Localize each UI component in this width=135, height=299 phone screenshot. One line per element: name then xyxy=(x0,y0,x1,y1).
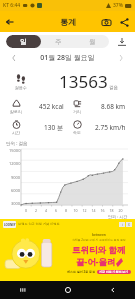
staticText: 18 xyxy=(107,208,116,213)
button[interactable]: Previous day xyxy=(8,52,20,64)
staticText: 2.75 km/h xyxy=(95,123,126,132)
staticText: 속도 xyxy=(73,130,81,135)
staticText: 끌-어-올려 xyxy=(76,256,116,268)
button[interactable]: Advertisement xyxy=(0,219,135,281)
staticText: 12000 xyxy=(9,161,21,166)
staticText: 단위 : 걸음 xyxy=(6,140,28,146)
staticText: 6 xyxy=(51,208,61,213)
staticText: 브랜드 신규 런칭 기념 이벤트 xyxy=(18,222,60,226)
staticText: 8.68 km xyxy=(101,102,126,111)
button[interactable]: 시간 xyxy=(6,117,67,138)
staticText: 지금 바로 기획전 보기 xyxy=(99,270,129,274)
button[interactable]: 속도 xyxy=(67,117,129,138)
staticText: 130 분 xyxy=(44,123,64,132)
staticText: 시간 xyxy=(12,130,20,135)
staticText: 9000 xyxy=(11,175,21,180)
staticText: 20 xyxy=(116,208,125,213)
staticText: 월 xyxy=(89,38,96,46)
button[interactable]: 일 xyxy=(6,35,41,48)
staticText: 15000 xyxy=(9,148,21,153)
button[interactable]: 거리 xyxy=(67,96,129,117)
staticText: 37% xyxy=(113,2,123,9)
button[interactable]: Info xyxy=(119,222,125,227)
button[interactable]: Back xyxy=(0,12,20,32)
button[interactable]: 월 xyxy=(75,35,109,48)
staticText: X xyxy=(128,223,130,227)
button[interactable]: Share xyxy=(115,13,133,31)
staticText: 10 xyxy=(71,208,80,213)
staticText: between xyxy=(92,233,106,237)
staticText: 2 xyxy=(31,208,41,213)
staticText: 일 xyxy=(20,38,27,46)
staticText: 16 xyxy=(98,208,107,213)
staticText: 걸음수 xyxy=(15,85,27,90)
button[interactable]: Download xyxy=(114,34,129,49)
staticText: 단위 : 시간 xyxy=(108,214,128,219)
staticText: i xyxy=(122,223,123,227)
staticText: 14 xyxy=(89,208,98,213)
staticText: 4 xyxy=(41,208,51,213)
button[interactable]: Recent apps xyxy=(0,281,45,299)
button[interactable]: 칼로리 xyxy=(6,96,67,117)
staticText: 3000 xyxy=(11,201,21,206)
staticText: 12 xyxy=(80,208,89,213)
button[interactable]: Home xyxy=(45,281,90,299)
staticText: KT 6:44 xyxy=(3,2,21,9)
staticText: 452 kcal xyxy=(39,102,64,111)
staticText: 6000 xyxy=(11,188,21,193)
staticText: 통계 xyxy=(60,17,76,27)
button[interactable]: Next day xyxy=(115,52,127,64)
staticText: 0 xyxy=(21,208,31,213)
staticText: 칼로리 xyxy=(10,109,22,114)
staticText: 8 xyxy=(61,208,71,213)
staticText: LOONEY xyxy=(4,223,16,227)
staticText: 트위티와 함께 xyxy=(72,244,126,256)
staticText: 거리 xyxy=(73,109,81,114)
staticText: 베스트 셀러 2종 증정 xyxy=(67,270,96,274)
staticText: 13563 xyxy=(59,70,108,93)
staticText: 걸음 xyxy=(109,85,118,91)
button[interactable]: 주 xyxy=(41,35,75,48)
staticText: 01월 28일 월요일 xyxy=(20,53,115,63)
staticText: 주 xyxy=(55,38,62,46)
button[interactable]: Camera xyxy=(97,13,115,31)
button[interactable]: Close ad xyxy=(126,222,132,227)
button[interactable]: Back xyxy=(90,281,135,299)
staticText: 신제품 2만원 구매 시 프로메이드 증정 증정 xyxy=(72,238,126,242)
